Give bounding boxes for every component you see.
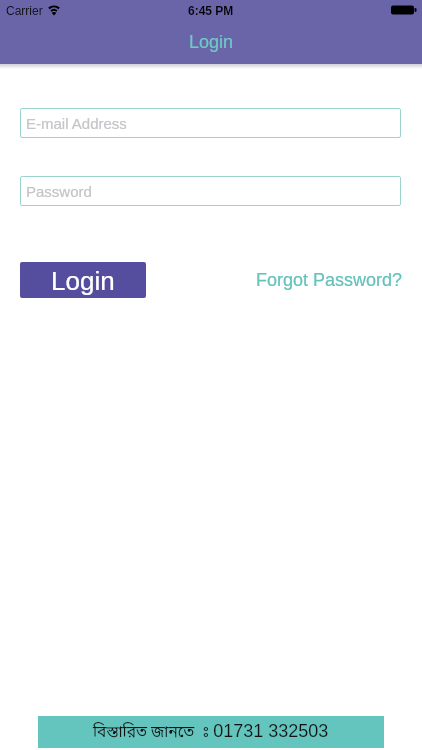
- staticText: বিস্তারিত জানতে ঃ 01731 332503: [93, 721, 329, 744]
- staticText: Forgot Password?: [256, 270, 403, 290]
- button[interactable]: E-mail Address: [20, 108, 401, 138]
- button[interactable]: Password: [20, 176, 401, 206]
- staticText: E-mail Address: [26, 115, 127, 132]
- staticText: Password: [26, 183, 92, 200]
- staticText: 6:45 PM: [188, 4, 234, 17]
- staticText: Login: [189, 32, 234, 52]
- staticText: Login: [51, 266, 115, 295]
- button[interactable]: Forgot Password?: [244, 262, 414, 298]
- button[interactable]: Login: [20, 262, 146, 298]
- staticText: Carrier: [6, 4, 43, 17]
- button[interactable]: বিস্তারিত জানতে ঃ 01731 332503: [38, 716, 384, 748]
